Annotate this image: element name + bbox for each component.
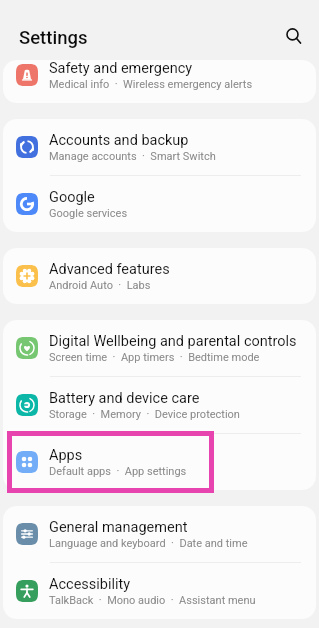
staticText: Accessibility	[49, 576, 131, 593]
staticText: Apps	[49, 447, 83, 464]
button[interactable]: Google	[3, 176, 316, 232]
staticText: Battery and device care	[49, 390, 200, 407]
button[interactable]: General management	[3, 506, 316, 562]
button[interactable]: Battery and device care	[3, 377, 316, 433]
button[interactable]: Apps	[3, 434, 316, 490]
staticText: Google	[49, 189, 95, 206]
staticText: Settings	[19, 27, 88, 49]
staticText: Screen time · App timers · Bedtime mode	[49, 351, 260, 364]
button[interactable]: Advanced features	[3, 248, 316, 304]
button[interactable]: Accounts and backup	[3, 119, 316, 175]
button[interactable]: Safety and emergency	[3, 60, 316, 103]
staticText: Accounts and backup	[49, 132, 189, 149]
staticText: TalkBack · Mono audio · Assistant menu	[49, 594, 256, 607]
staticText: Language and keyboard · Date and time	[49, 537, 248, 550]
staticText: Android Auto · Labs	[49, 279, 151, 292]
button[interactable]: Search	[277, 18, 310, 51]
staticText: Digital Wellbeing and parental controls	[49, 333, 297, 350]
staticText: General management	[49, 519, 188, 536]
staticText: Default apps · App settings	[49, 465, 187, 478]
staticText: Google services	[49, 207, 128, 220]
staticText: Medical info · Wireless emergency alerts	[49, 78, 253, 91]
button[interactable]: Accessibility	[3, 563, 316, 619]
button[interactable]: Digital Wellbeing and parental controls	[3, 320, 316, 376]
staticText: Storage · Memory · Device protection	[49, 408, 240, 421]
staticText: Manage accounts · Smart Switch	[49, 150, 216, 163]
staticText: Advanced features	[49, 261, 170, 278]
staticText: Safety and emergency	[49, 60, 193, 77]
